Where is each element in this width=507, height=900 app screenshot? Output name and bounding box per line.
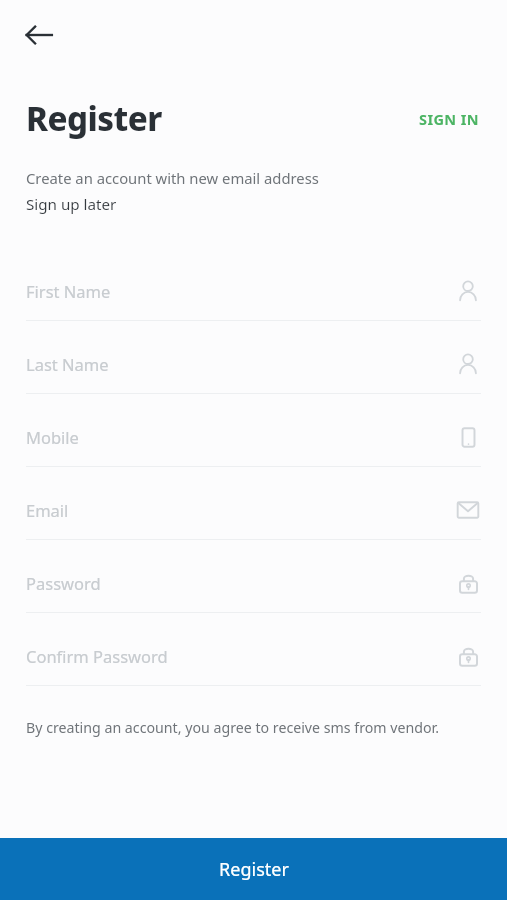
button[interactable]: Back bbox=[12, 8, 66, 62]
staticText: Sign up later bbox=[26, 194, 117, 215]
button[interactable]: Last Name bbox=[26, 335, 481, 408]
button[interactable]: Sign up later bbox=[26, 194, 117, 215]
staticText: Register bbox=[26, 96, 162, 141]
staticText: Last Name bbox=[26, 353, 109, 375]
button[interactable]: First Name bbox=[26, 262, 481, 335]
staticText: SIGN IN bbox=[419, 109, 479, 129]
button[interactable]: Confirm Password bbox=[26, 627, 481, 700]
staticText: Email bbox=[26, 499, 69, 521]
staticText: Mobile bbox=[26, 426, 79, 448]
button[interactable]: Mobile bbox=[26, 408, 481, 481]
staticText: Confirm Password bbox=[26, 645, 168, 667]
staticText: Register bbox=[219, 857, 289, 882]
staticText: Password bbox=[26, 572, 101, 594]
button[interactable]: Register bbox=[0, 838, 507, 900]
staticText: Create an account with new email address bbox=[26, 168, 319, 188]
button[interactable]: Email bbox=[26, 481, 481, 554]
button[interactable]: Password bbox=[26, 554, 481, 627]
staticText: By creating an account, you agree to rec… bbox=[26, 718, 439, 737]
staticText: First Name bbox=[26, 280, 111, 302]
button[interactable]: SIGN IN bbox=[417, 103, 481, 135]
